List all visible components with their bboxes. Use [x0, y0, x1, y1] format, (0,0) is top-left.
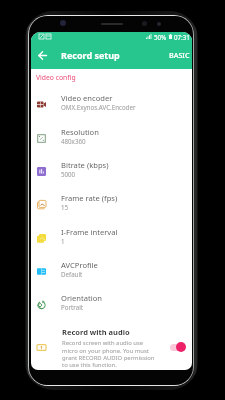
- staticText: 15: [61, 203, 69, 211]
- staticText: Frame rate (fps): [61, 193, 118, 203]
- staticText: 07:31: [174, 33, 190, 41]
- button[interactable]: Bitrate (kbps): [31, 154, 192, 187]
- button[interactable]: Record with audio: [31, 327, 192, 369]
- button[interactable]: Record with audio toggle: [169, 340, 189, 354]
- staticText: BASIC: [169, 50, 190, 60]
- staticText: 1: [61, 237, 65, 245]
- staticText: Default: [61, 270, 83, 278]
- staticText: 5000: [61, 170, 76, 178]
- staticText: Record setup: [61, 49, 120, 61]
- button[interactable]: Resolution: [31, 121, 192, 154]
- staticText: 50%: [154, 33, 167, 41]
- staticText: 480x360: [61, 137, 86, 145]
- staticText: Portrait: [61, 303, 84, 311]
- button[interactable]: Back: [34, 47, 50, 63]
- button[interactable]: BASIC: [161, 47, 192, 63]
- staticText: AVCProfile: [61, 260, 98, 270]
- staticText: Bitrate (kbps): [61, 160, 109, 170]
- button[interactable]: Frame rate (fps): [31, 187, 192, 220]
- staticText: Video config: [36, 73, 76, 82]
- staticText: Orientation: [61, 293, 102, 303]
- button[interactable]: Video encoder: [31, 87, 192, 120]
- staticText: Record with audio: [62, 327, 130, 337]
- staticText: Record screen with audio use micro on yo…: [62, 339, 157, 369]
- staticText: Resolution: [61, 127, 99, 137]
- button[interactable]: AVCProfile: [31, 254, 192, 287]
- staticText: OMX.Exynos.AVC.Encoder: [61, 103, 136, 111]
- button[interactable]: I-Frame interval: [31, 221, 192, 254]
- staticText: I-Frame interval: [61, 227, 118, 237]
- staticText: Video encoder: [61, 93, 113, 103]
- button[interactable]: Orientation: [31, 287, 192, 320]
